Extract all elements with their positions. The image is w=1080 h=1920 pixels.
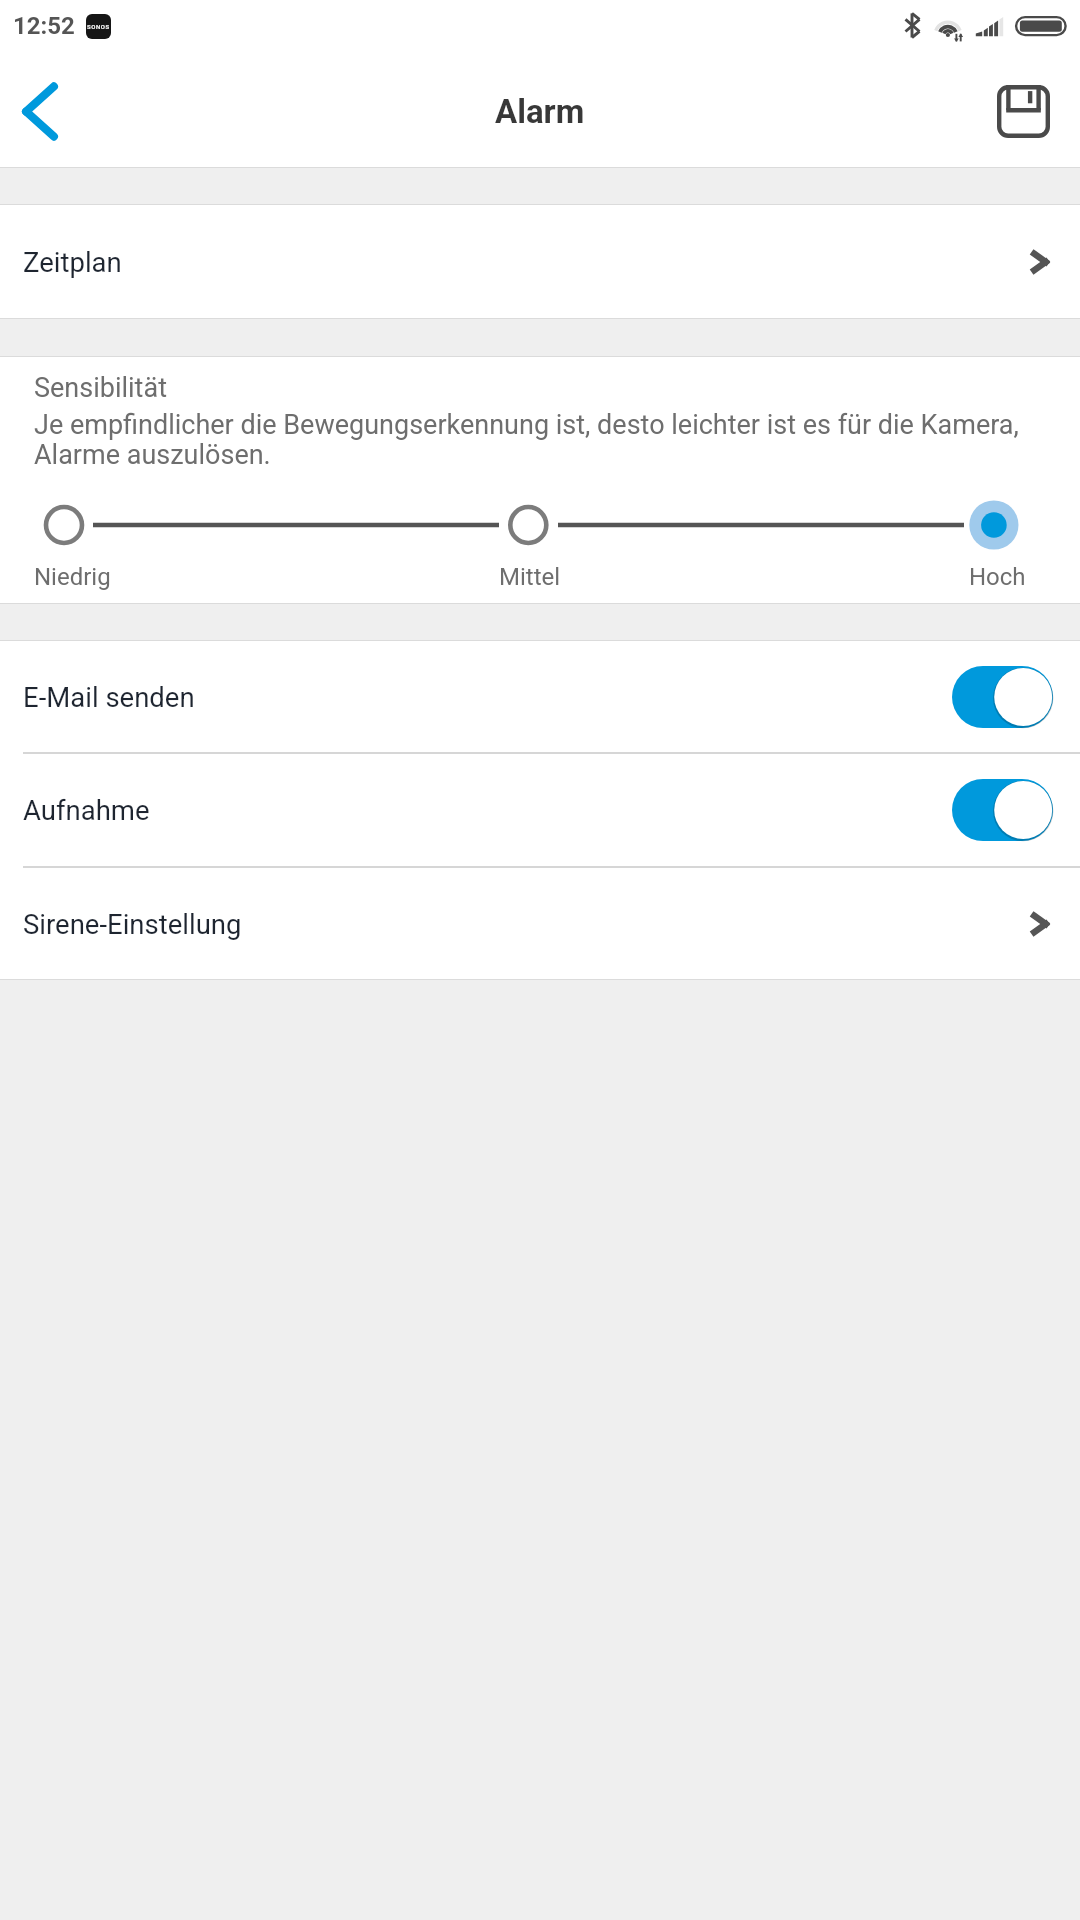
staticText: Niedrig	[34, 563, 111, 591]
staticText: Sensibilität	[34, 372, 167, 404]
button[interactable]: Back	[0, 55, 80, 167]
staticText: Je empfindlicher die Bewegungserkennung …	[34, 409, 1058, 471]
staticText: Sirene-Einstellung	[23, 908, 242, 940]
staticText: 12:52	[13, 12, 75, 40]
staticText: Zeitplan	[23, 246, 122, 278]
button[interactable]: Sirene-Einstellung	[0, 868, 1080, 979]
staticText: SONOS	[87, 23, 110, 30]
staticText: Hoch	[969, 563, 1026, 591]
staticText: Aufnahme	[23, 794, 150, 826]
staticText: E-Mail senden	[23, 681, 195, 713]
button[interactable]: Save	[966, 55, 1080, 167]
staticText: Mittel	[499, 563, 561, 591]
button[interactable]: Zeitplan	[0, 205, 1080, 318]
staticText: Alarm	[495, 92, 585, 131]
button[interactable]: E-Mail senden	[0, 641, 1080, 752]
button[interactable]: Aufnahme	[0, 754, 1080, 866]
